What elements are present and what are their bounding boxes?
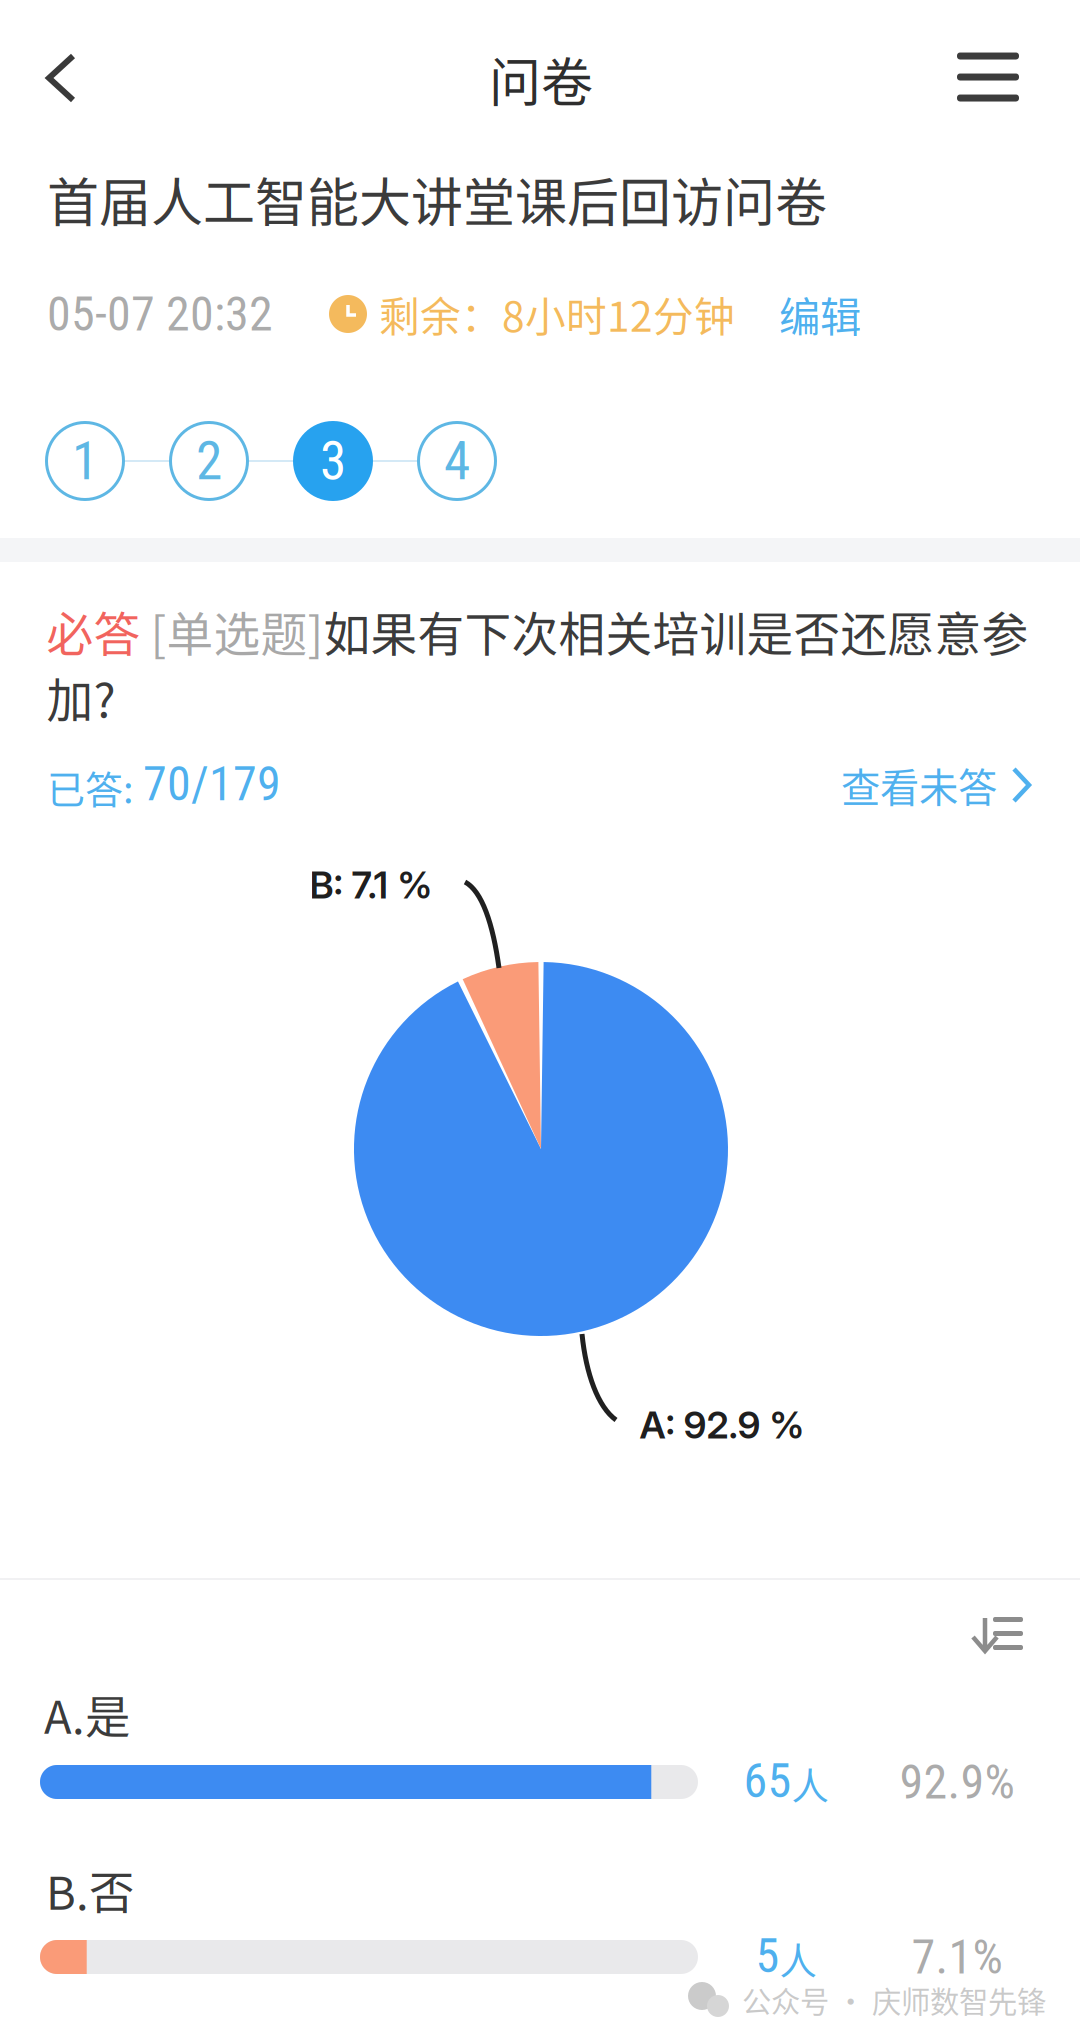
button[interactable]: 查看未答 (841, 748, 1033, 821)
staticText: 7.1% (911, 1929, 1002, 1985)
staticText: B.否 (46, 1857, 134, 1923)
button[interactable]: 4 (417, 421, 497, 501)
staticText: 3 (320, 430, 346, 492)
staticText: 剩余：8小时12分钟 (379, 285, 735, 343)
button[interactable]: 2 (169, 421, 249, 501)
staticText: 已答: 70/179 (47, 756, 281, 814)
staticText: 65人 (743, 1753, 828, 1811)
staticText: 公众号 · 庆师数智先锋 (742, 1979, 1046, 2021)
staticText: 2 (196, 430, 222, 492)
staticText: 查看未答 (841, 756, 997, 813)
staticText: 编辑 (779, 284, 861, 344)
staticText: 92.9% (899, 1754, 1014, 1810)
button[interactable]: 1 (45, 421, 125, 501)
button[interactable]: 3 (293, 421, 373, 501)
staticText: 4 (444, 430, 470, 492)
staticText: 05-07 20:32 (47, 286, 273, 342)
staticText: A.是 (44, 1681, 130, 1747)
button[interactable]: 编辑 (735, 274, 861, 354)
staticText: 首届人工智能大讲堂课后回访问卷 (47, 161, 827, 237)
staticText: 问卷 (489, 41, 593, 117)
staticText: A: 92.9 % (639, 1402, 804, 1448)
staticText: 1 (72, 430, 98, 492)
button[interactable]: Sort (955, 1597, 1045, 1673)
button[interactable]: Menu (928, 12, 1048, 142)
button[interactable]: Back (0, 0, 130, 130)
staticText: 必答 [单选题]如果有下次相关培训是否还愿意参加? (46, 598, 1028, 730)
staticText: B: 7.1 % (309, 862, 432, 908)
staticText: 5人 (755, 1928, 816, 1986)
